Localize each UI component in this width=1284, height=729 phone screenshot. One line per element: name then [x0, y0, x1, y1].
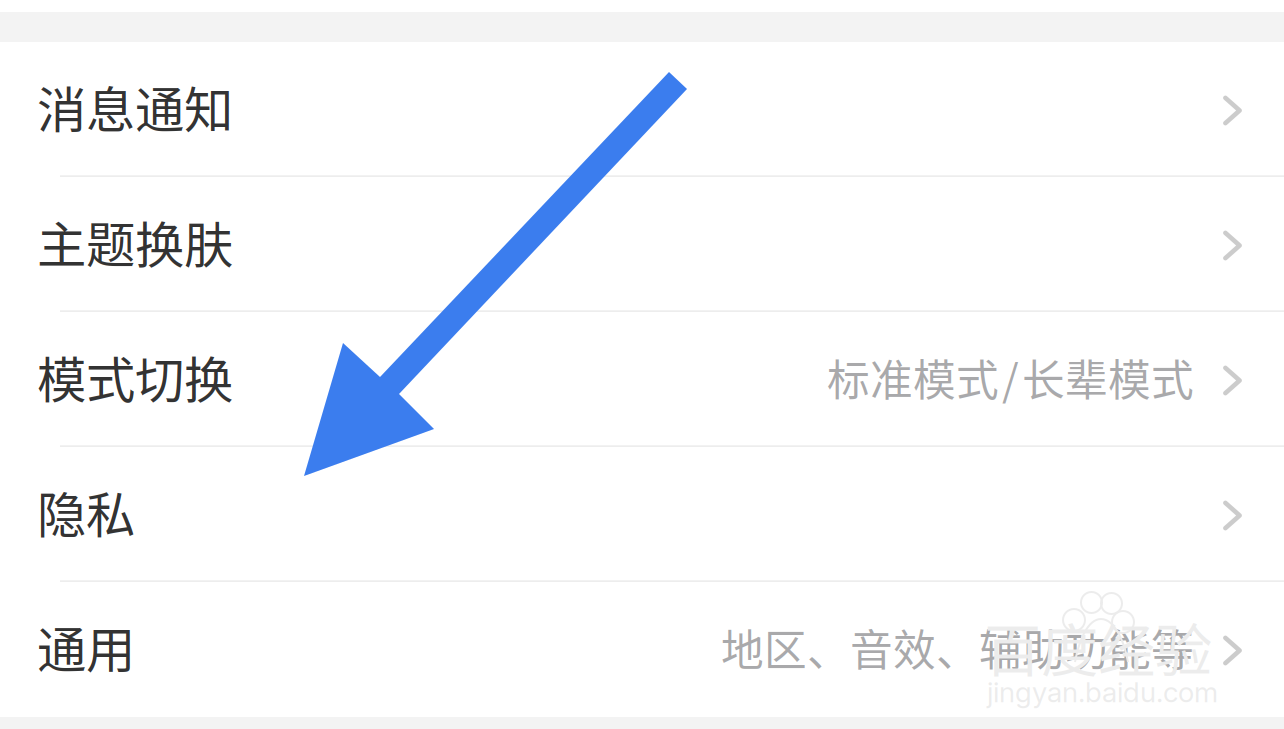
staticText: 百度经验 [984, 605, 1212, 688]
button[interactable]: 隐私 [0, 447, 1284, 582]
staticText: 地区、音效、辅助功能等 [721, 617, 1194, 678]
staticText: 模式切换 [37, 341, 233, 412]
button[interactable]: 模式切换 [0, 312, 1284, 447]
staticText: 主题换肤 [37, 206, 233, 277]
button[interactable]: 主题换肤 [0, 177, 1284, 312]
staticText: 消息通知 [37, 71, 233, 142]
staticText: 通用 [37, 611, 135, 682]
staticText: 隐私 [37, 476, 135, 547]
staticText: 标准模式 / 长辈模式 [827, 347, 1194, 408]
button[interactable]: 通用 [0, 582, 1284, 717]
button[interactable]: 消息通知 [0, 42, 1284, 177]
staticText: jingyan.baidu.com [987, 675, 1218, 709]
